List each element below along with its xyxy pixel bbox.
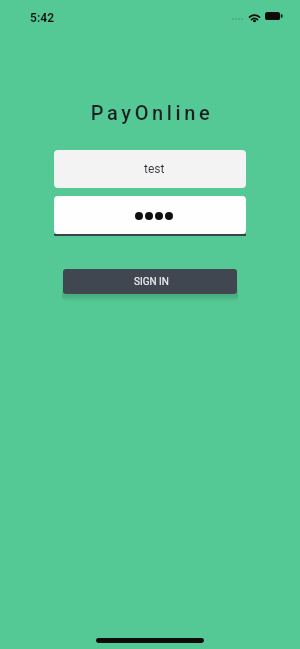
other: Battery [265, 12, 283, 20]
staticText: SIGN IN [134, 276, 169, 288]
button[interactable]: test [54, 150, 246, 188]
button[interactable]: Password [54, 196, 246, 236]
button[interactable]: SIGN IN [63, 269, 237, 294]
staticText: PayOnline [2, 101, 300, 124]
staticText: 5:42 [30, 11, 55, 25]
staticText: test [144, 162, 165, 176]
other: Wi-Fi [248, 10, 261, 22]
